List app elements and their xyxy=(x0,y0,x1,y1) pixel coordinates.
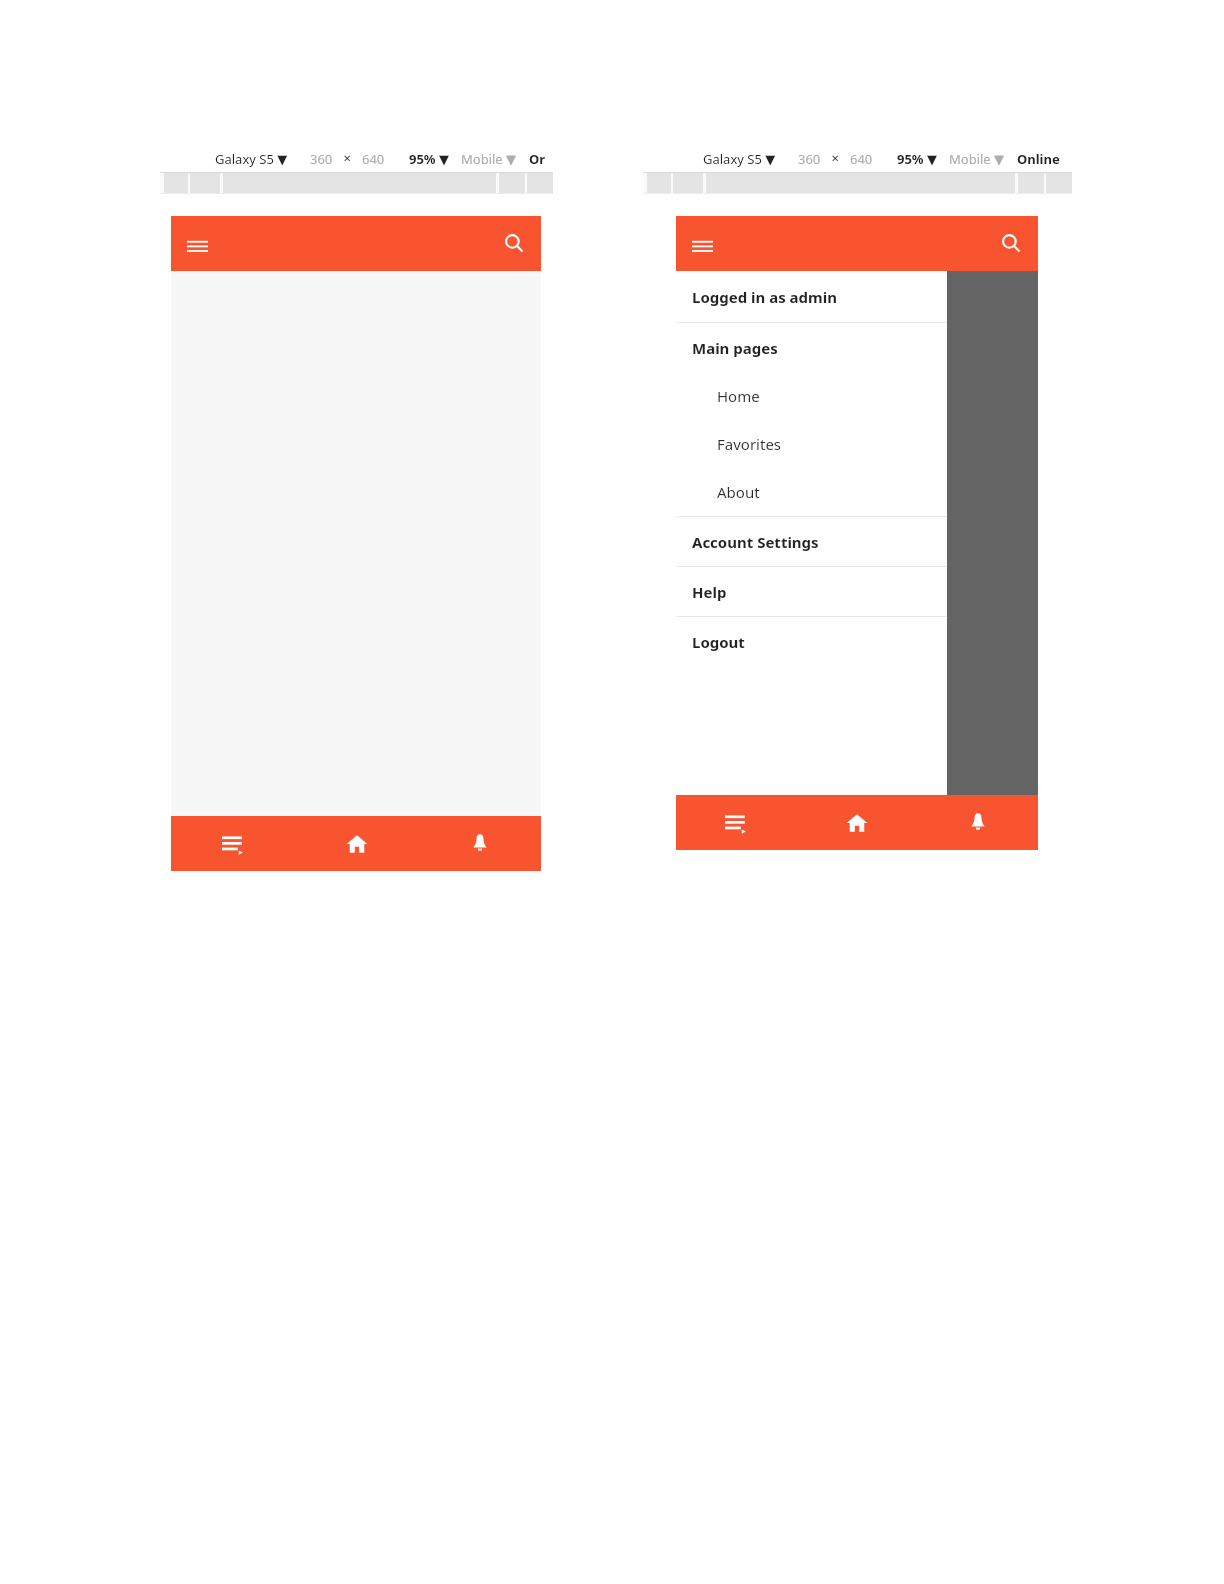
button[interactable]: Playlist xyxy=(676,795,796,850)
button[interactable]: Main pages xyxy=(676,323,947,372)
button[interactable]: Open navigation menu xyxy=(692,236,713,252)
staticText: Mobile ▼ xyxy=(949,150,1005,168)
button[interactable]: Favorites xyxy=(676,420,947,468)
button[interactable]: Home xyxy=(295,816,418,871)
button[interactable]: Notifications xyxy=(418,816,541,871)
other: Playlist xyxy=(725,813,747,833)
staticText: Online xyxy=(1017,150,1060,168)
staticText: 95% ▼ xyxy=(897,150,937,168)
button[interactable]: Logout xyxy=(676,617,947,666)
staticText: Main pages xyxy=(692,338,778,358)
staticText: ✕ xyxy=(831,153,840,165)
button[interactable]: Search xyxy=(504,233,525,254)
staticText: Logged in as admin xyxy=(692,287,837,307)
staticText: Help xyxy=(692,582,727,602)
button[interactable]: About xyxy=(676,468,947,516)
staticText: Galaxy S5 ▼ xyxy=(215,150,288,168)
other: Playlist xyxy=(222,834,244,854)
staticText: Galaxy S5 ▼ xyxy=(703,150,776,168)
button[interactable]: Notifications xyxy=(917,795,1038,850)
other: Notifications xyxy=(968,812,988,834)
staticText: 360 xyxy=(310,150,333,168)
button[interactable]: Logged in as admin xyxy=(676,271,947,322)
button[interactable]: Open navigation menu xyxy=(187,236,208,252)
staticText: 95% ▼ xyxy=(409,150,449,168)
staticText: Or xyxy=(529,150,546,168)
staticText: Mobile ▼ xyxy=(461,150,517,168)
button[interactable]: Home xyxy=(796,795,917,850)
staticText: Account Settings xyxy=(692,532,819,552)
staticText: About xyxy=(717,482,760,502)
staticText: 640 xyxy=(850,150,873,168)
staticText: 360 xyxy=(798,150,821,168)
staticText: Favorites xyxy=(717,434,782,454)
button[interactable]: Home xyxy=(676,372,947,420)
other: Home xyxy=(346,833,368,855)
staticText: Home xyxy=(717,386,760,406)
button[interactable]: Account Settings xyxy=(676,517,947,566)
other: Notifications xyxy=(470,833,490,855)
button[interactable]: Playlist xyxy=(171,816,295,871)
other: Home xyxy=(846,812,868,834)
button[interactable]: Help xyxy=(676,567,947,616)
staticText: ✕ xyxy=(343,153,352,165)
staticText: Logout xyxy=(692,632,745,652)
staticText: 640 xyxy=(362,150,385,168)
button[interactable]: Search xyxy=(1001,233,1022,254)
